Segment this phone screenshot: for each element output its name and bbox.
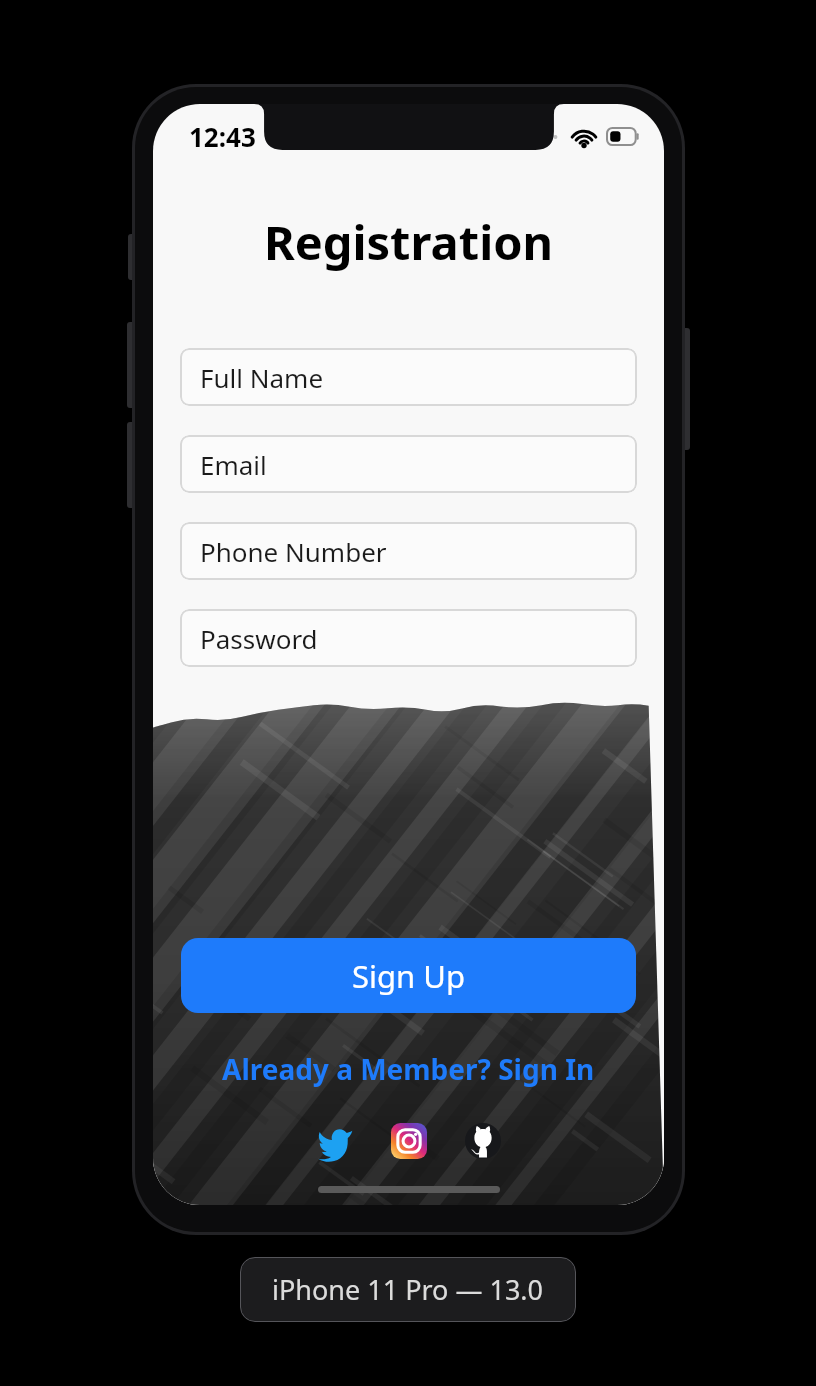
staticText: 12:43: [189, 119, 256, 154]
staticText: Already a Member? Sign In: [222, 1050, 595, 1088]
button[interactable]: Password: [180, 609, 637, 667]
staticText: Sign Up: [352, 955, 466, 997]
staticText: Email: [200, 447, 267, 482]
button[interactable]: Sign Up: [181, 938, 636, 1013]
staticText: Registration: [153, 210, 664, 274]
button[interactable]: Twitter: [312, 1118, 358, 1164]
button[interactable]: Instagram: [386, 1118, 432, 1164]
button[interactable]: Email: [180, 435, 637, 493]
staticText: iPhone 11 Pro — 13.0: [272, 1271, 544, 1308]
staticText: Full Name: [200, 360, 324, 395]
staticText: Password: [200, 621, 318, 656]
button[interactable]: Phone Number: [180, 522, 637, 580]
button[interactable]: Already a Member? Sign In: [210, 1045, 607, 1093]
staticText: Phone Number: [200, 534, 387, 569]
button[interactable]: Full Name: [180, 348, 637, 406]
button[interactable]: GitHub: [460, 1118, 506, 1164]
